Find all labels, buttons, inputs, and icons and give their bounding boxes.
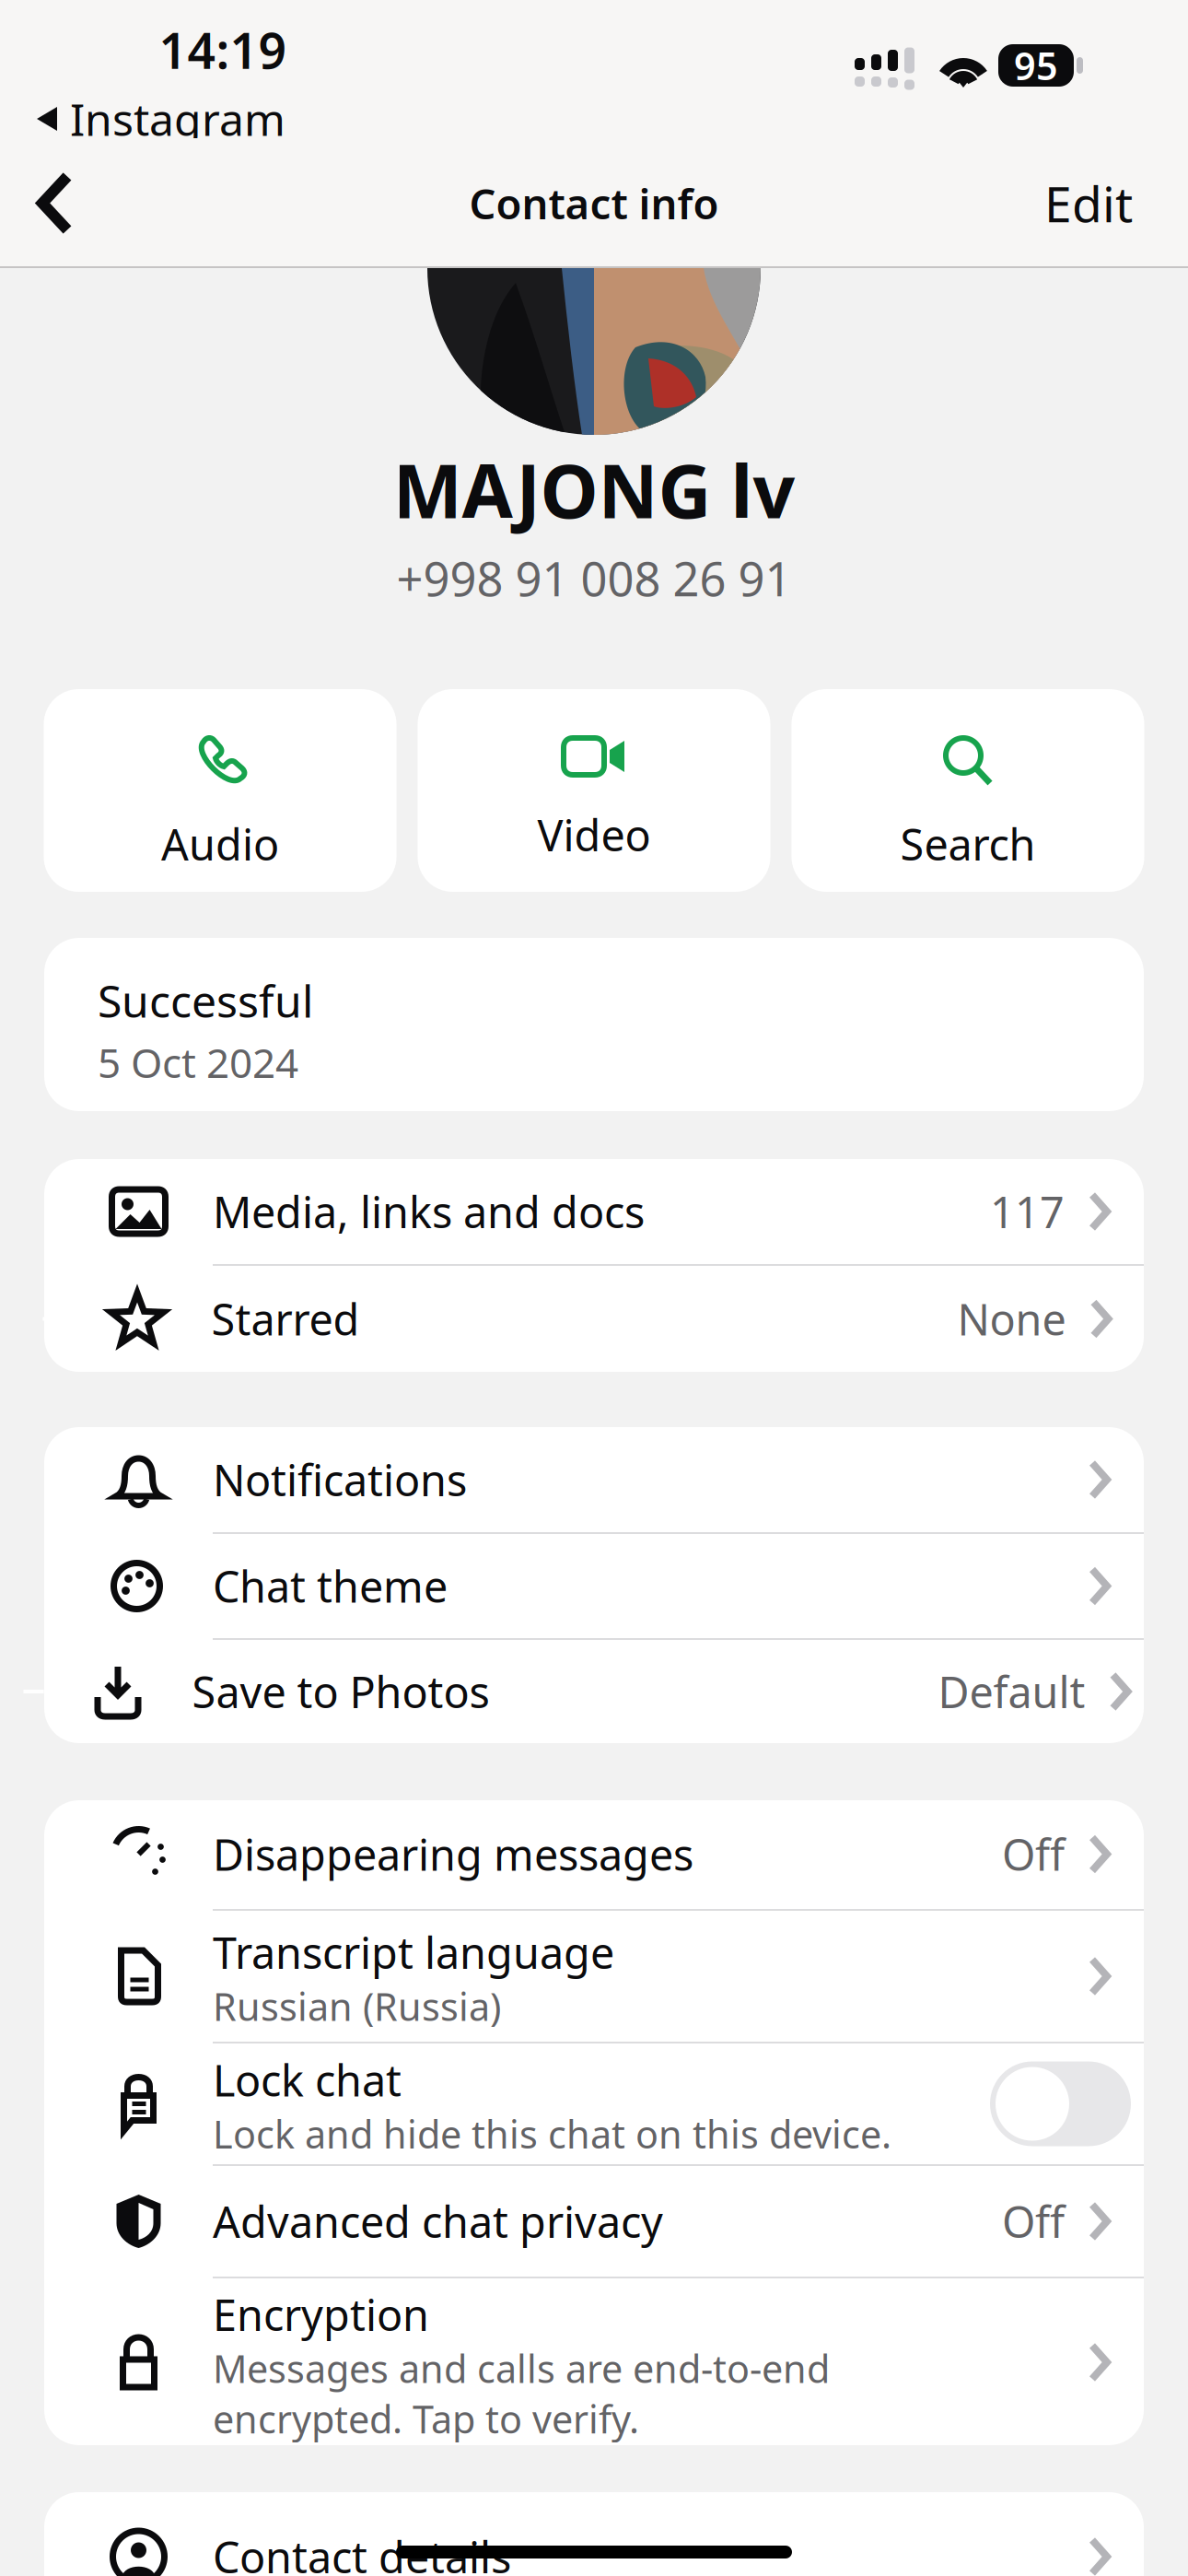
staticText: Media, links and docs (213, 1183, 645, 1240)
button[interactable]: Notifications (44, 1427, 1144, 1532)
staticText: Russian (Russia) (213, 1981, 501, 2031)
staticText: Messages and calls are end-to-end encryp… (213, 2343, 830, 2444)
staticText: Encryption (213, 2286, 429, 2343)
button[interactable]: Lock chat (44, 2043, 1144, 2164)
staticText: MAJONG lv (393, 441, 795, 539)
staticText: +998 91 008 26 91 (396, 547, 792, 609)
staticText: Lock and hide this chat on this device. (213, 2108, 891, 2159)
staticText: Save to Photos (192, 1663, 489, 1720)
button[interactable]: Edit (1019, 147, 1159, 260)
staticText: Off (1002, 1826, 1065, 1883)
staticText: Audio (161, 815, 279, 872)
staticText: None (957, 1290, 1066, 1347)
button[interactable]: Search (792, 689, 1144, 892)
staticText: Successful (98, 971, 313, 1030)
button[interactable]: Disappearing messages (44, 1799, 1144, 1909)
staticText: Lock chat (213, 2051, 402, 2108)
button[interactable]: Transcript language (44, 1911, 1144, 2042)
staticText: Default (938, 1663, 1085, 1720)
button[interactable]: Video (418, 689, 770, 892)
staticText: 95 (1014, 40, 1058, 91)
staticText: 117 (990, 1183, 1065, 1240)
staticText: Starred (211, 1290, 360, 1347)
button[interactable]: Media, links and docs (44, 1159, 1144, 1264)
staticText: Edit (1044, 171, 1133, 236)
staticText: Contact details (213, 2528, 511, 2576)
staticText: 5 Oct 2024 (98, 1035, 298, 1089)
staticText: Transcript language (213, 1924, 614, 1981)
button[interactable]: Advanced chat privacy (44, 2166, 1144, 2277)
staticText: Search (900, 815, 1036, 872)
staticText: Disappearing messages (213, 1826, 693, 1883)
staticText: Advanced chat privacy (213, 2193, 663, 2250)
button[interactable]: Encryption (44, 2278, 1144, 2446)
staticText: Off (1002, 2193, 1065, 2250)
staticText: 14:19 (159, 17, 287, 82)
button[interactable]: Save to Photos (44, 1640, 1144, 1743)
staticText: Contact info (469, 175, 719, 231)
staticText: Instagram (70, 89, 285, 148)
staticText: Chat theme (213, 1557, 448, 1615)
button[interactable]: Chat theme (44, 1534, 1144, 1638)
staticText: Video (537, 806, 651, 863)
button[interactable]: Contact details (44, 2492, 1144, 2576)
staticText: Notifications (213, 1451, 467, 1508)
button[interactable]: Starred (44, 1266, 1144, 1372)
button[interactable]: Back (0, 148, 111, 258)
button[interactable]: Audio (44, 689, 396, 892)
